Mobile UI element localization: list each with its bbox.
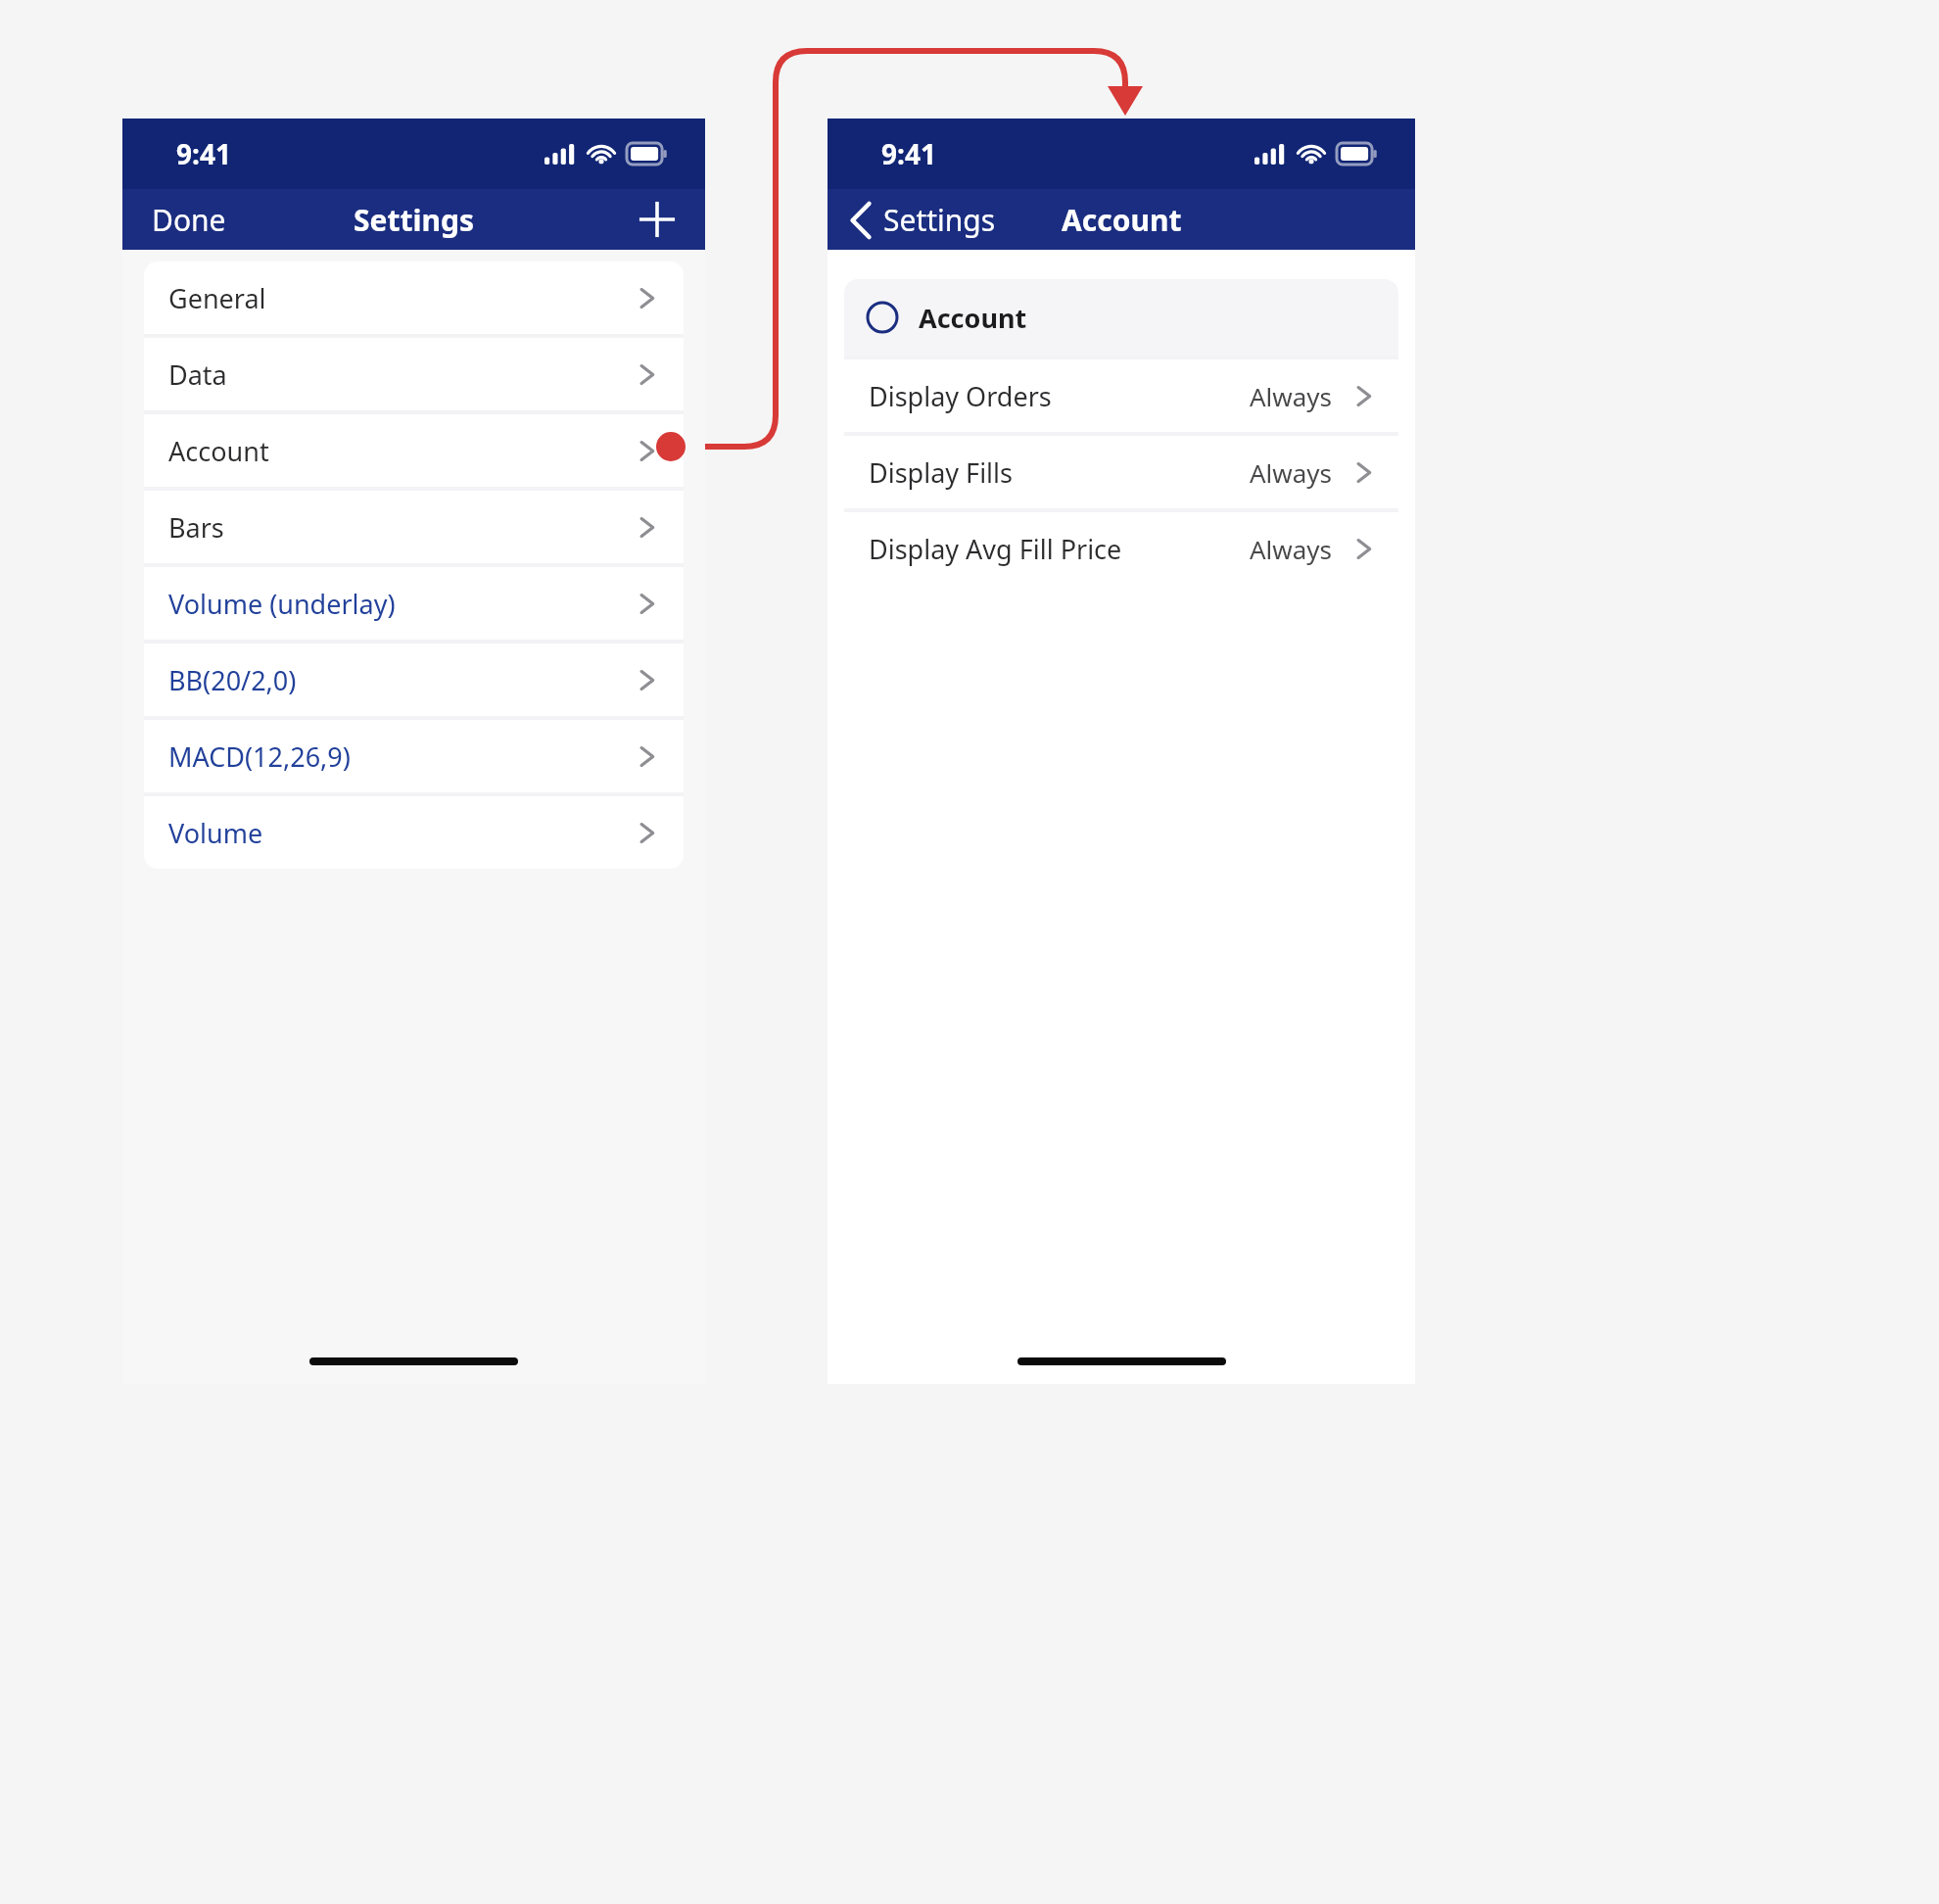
button[interactable]: Bars	[144, 491, 684, 563]
staticText: General	[168, 280, 266, 316]
staticText: Account	[1062, 200, 1182, 240]
button[interactable]: General	[144, 262, 684, 334]
button[interactable]: Account	[144, 414, 684, 487]
button[interactable]: Add	[637, 199, 678, 240]
staticText: Account	[919, 300, 1027, 336]
staticText: BB(20/2,0)	[168, 662, 297, 698]
button[interactable]: Done	[122, 200, 242, 240]
staticText: Always	[1250, 455, 1333, 490]
staticText: Volume	[168, 815, 263, 851]
button[interactable]: Account	[844, 279, 1398, 356]
staticText: Settings	[883, 200, 996, 240]
button[interactable]: Display Orders	[844, 359, 1398, 432]
staticText: Display Orders	[869, 378, 1052, 414]
staticText: Volume (underlay)	[168, 586, 396, 622]
button[interactable]: MACD(12,26,9)	[144, 720, 684, 792]
staticText: Bars	[168, 509, 224, 546]
button[interactable]: Volume	[144, 796, 684, 869]
staticText: Display Fills	[869, 454, 1013, 491]
button[interactable]: Display Avg Fill Price	[844, 512, 1398, 585]
staticText: Account	[168, 433, 269, 469]
button[interactable]: BB(20/2,0)	[144, 643, 684, 716]
button[interactable]: Settings	[828, 200, 1012, 240]
staticText: Display Avg Fill Price	[869, 531, 1122, 567]
staticText: Always	[1250, 532, 1333, 566]
staticText: Always	[1250, 379, 1333, 413]
button[interactable]: Data	[144, 338, 684, 410]
button[interactable]: Volume (underlay)	[144, 567, 684, 640]
staticText: Data	[168, 357, 227, 393]
staticText: Settings	[354, 200, 474, 240]
staticText: 9:41	[881, 135, 936, 172]
button[interactable]: Display Fills	[844, 436, 1398, 508]
staticText: 9:41	[176, 135, 231, 172]
staticText: MACD(12,26,9)	[168, 738, 351, 775]
